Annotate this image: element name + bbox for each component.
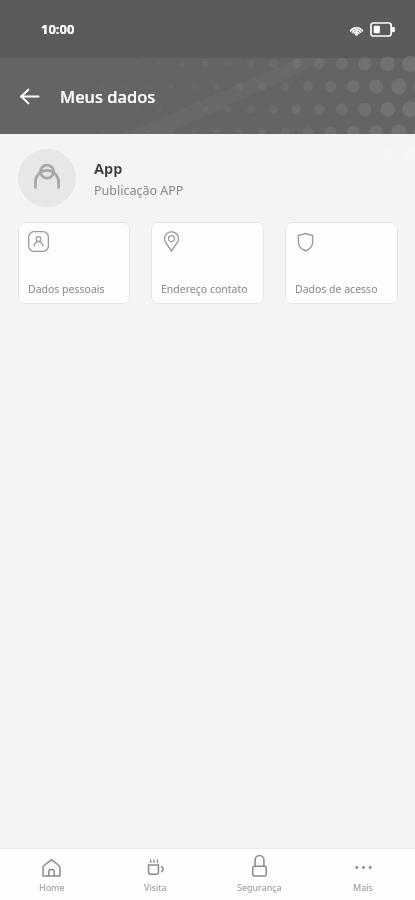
staticText: Home [39,881,65,893]
staticText: Dados pessoais [28,282,105,296]
staticText: App [94,158,123,178]
staticText: Publicação APP [94,182,184,199]
staticText: Dados de acesso [295,282,378,296]
staticText: Segurança [237,881,282,893]
staticText: Meus dados [60,85,156,107]
staticText: Mais [353,881,373,893]
button[interactable]: Visita [103,849,207,900]
staticText: 10:00 [41,20,75,38]
button[interactable]: Voltar [8,75,50,117]
button[interactable]: Dados pessoais [18,222,130,304]
staticText: Endereço contato [161,282,248,296]
button[interactable]: Endereço contato [151,222,264,304]
button[interactable]: Dados de acesso [285,222,398,304]
button[interactable]: Mais [311,849,415,900]
button[interactable]: Segurança [207,849,311,900]
button[interactable]: App [0,134,415,222]
staticText: Visita [144,881,167,893]
button[interactable]: Home [0,849,103,900]
